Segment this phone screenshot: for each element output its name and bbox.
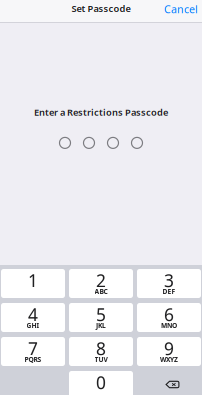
staticText: 3 [164,269,174,292]
button[interactable]: 6 [137,303,201,332]
staticText: TUV [94,355,107,364]
staticText: 8 [96,337,106,360]
button[interactable]: Cancel [164,2,202,20]
button[interactable]: 8 [69,337,133,366]
staticText: 9 [164,337,174,360]
staticText: DEF [162,287,175,296]
button[interactable]: 3 [137,269,201,298]
button[interactable]: 1 [1,269,65,298]
button[interactable]: 0 [69,371,133,395]
button[interactable]: 9 [137,337,201,366]
staticText: Set Passcode [71,2,130,15]
button[interactable]: 7 [1,337,65,366]
staticText: 2 [96,269,106,292]
staticText: 7 [28,337,38,360]
staticText: JKL [96,321,106,330]
button[interactable]: 5 [69,303,133,332]
button[interactable]: 2 [69,269,133,298]
button[interactable]: 4 [1,303,65,332]
staticText: Enter a Restrictions Passcode [34,106,168,118]
staticText: 6 [164,303,174,326]
staticText: 0 [96,371,106,394]
staticText: Cancel [164,2,198,16]
staticText: ABC [94,287,107,296]
staticText: 5 [96,303,106,326]
staticText: GHI [26,321,39,330]
button[interactable]: Delete [137,371,201,395]
staticText: PQRS [24,355,41,364]
staticText: WXYZ [160,355,178,364]
staticText: MNO [161,321,177,330]
staticText: 1 [28,269,38,292]
staticText: 4 [28,303,38,326]
